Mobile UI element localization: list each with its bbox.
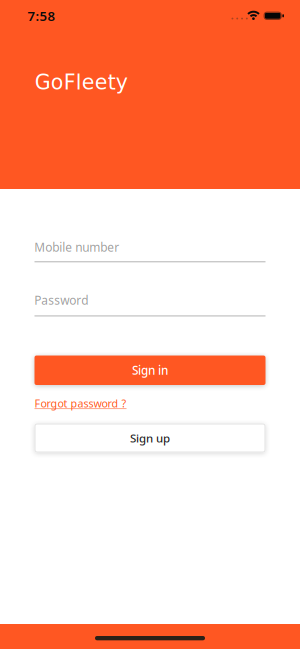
staticText: Mobile number: [34, 239, 119, 255]
staticText: Forgot password ?: [34, 396, 126, 411]
button[interactable]: Forgot password ?: [34, 396, 126, 411]
staticText: Sign in: [132, 362, 168, 378]
staticText: GoFleety: [35, 70, 128, 94]
staticText: Sign up: [130, 430, 170, 446]
button[interactable]: Sign up: [34, 423, 265, 452]
staticText: 7:58: [27, 7, 55, 25]
staticText: Password: [34, 292, 88, 308]
button[interactable]: Sign in: [34, 355, 265, 385]
